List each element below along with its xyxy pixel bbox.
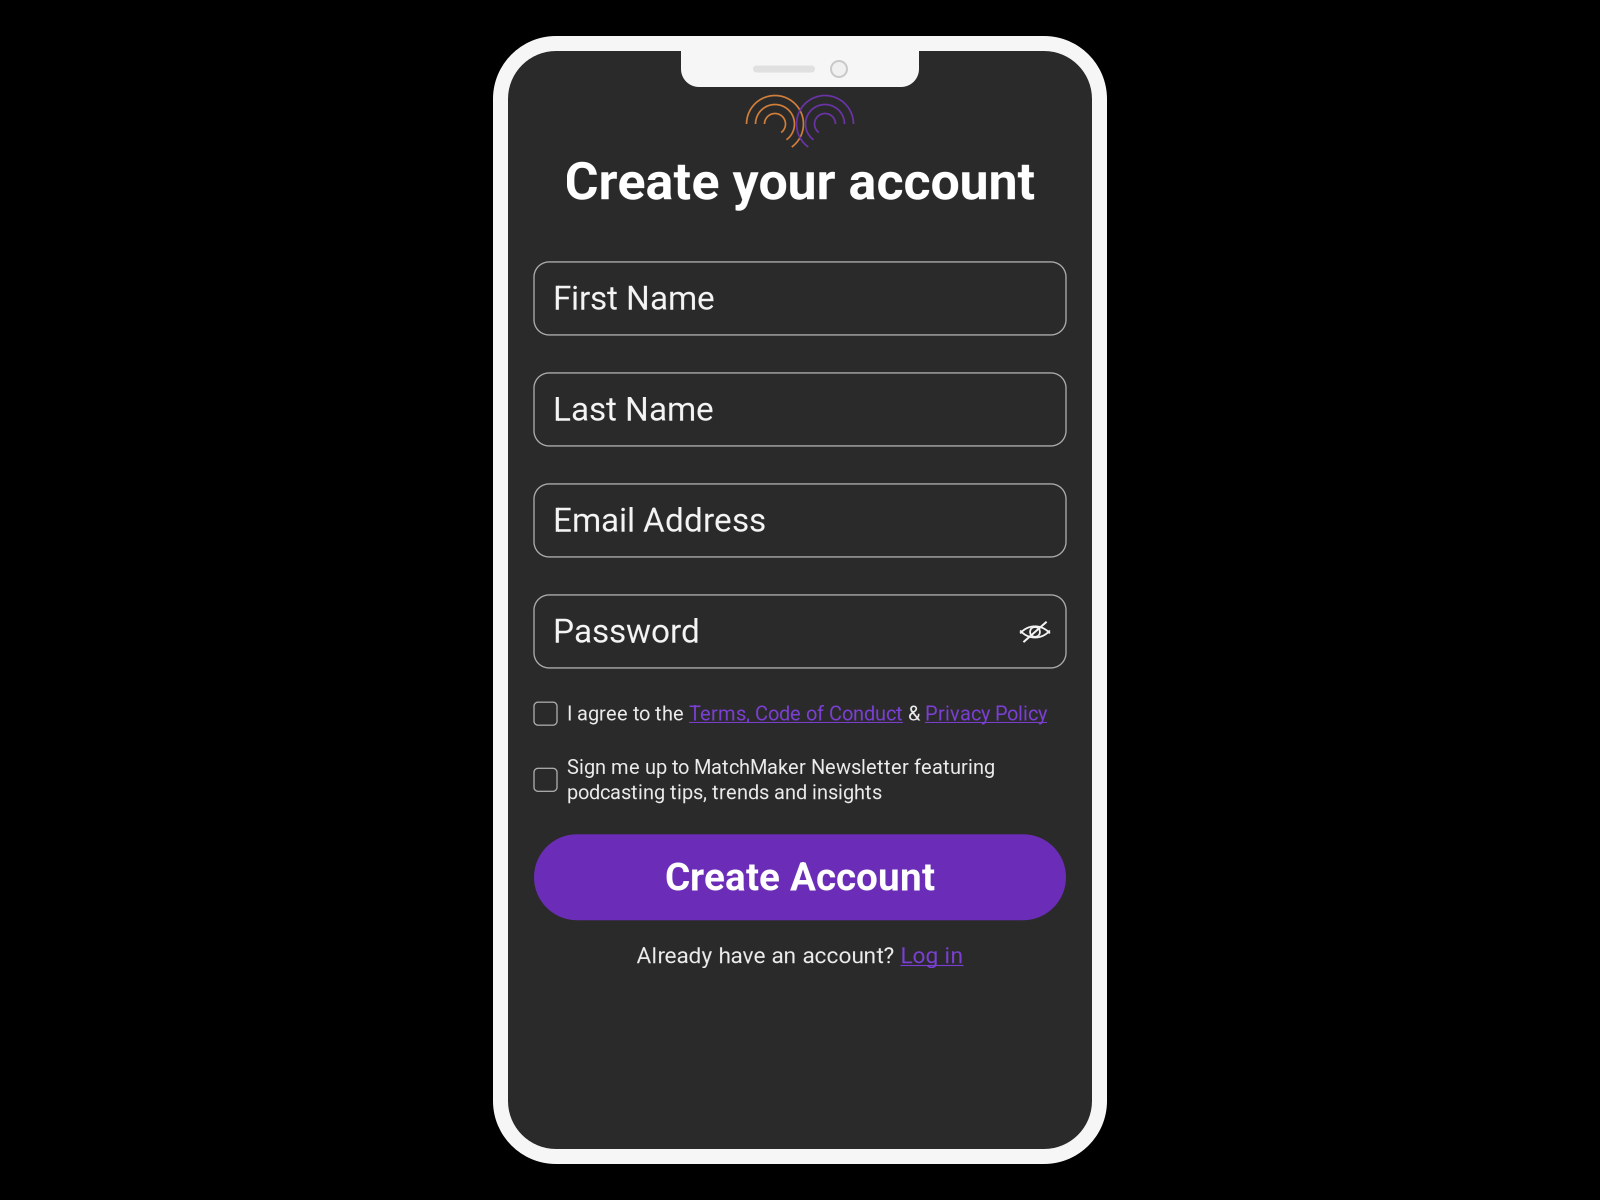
staticText: Create Account (665, 855, 935, 900)
button[interactable]: Sign me up to MatchMaker Newsletter feat… (534, 755, 1066, 804)
button[interactable]: First Name (534, 262, 1066, 335)
staticText: Privacy Policy (925, 702, 1047, 725)
staticText: Sign me up to MatchMaker Newsletter feat… (567, 755, 995, 779)
staticText: Create your account (564, 151, 1035, 212)
button[interactable]: Already have an account? (636, 942, 963, 969)
staticText: Terms, Code of Conduct (689, 702, 903, 725)
staticText: I agree to the (567, 702, 689, 725)
staticText: Already have an account? (636, 942, 894, 969)
staticText: First Name (553, 279, 715, 318)
button[interactable]: I agree to the (534, 702, 1066, 725)
button[interactable]: Last Name (534, 373, 1066, 446)
staticText: podcasting tips, trends and insights (567, 781, 882, 804)
staticText: Password (553, 612, 700, 651)
button[interactable]: Password (534, 595, 1066, 668)
staticText: Email Address (553, 501, 766, 540)
button[interactable]: Email Address (534, 484, 1066, 557)
staticText: & (903, 702, 925, 725)
staticText: Log in (900, 942, 963, 969)
button[interactable]: Show password (1020, 619, 1049, 644)
staticText: Last Name (553, 390, 714, 429)
button[interactable]: Create Account (534, 834, 1066, 920)
